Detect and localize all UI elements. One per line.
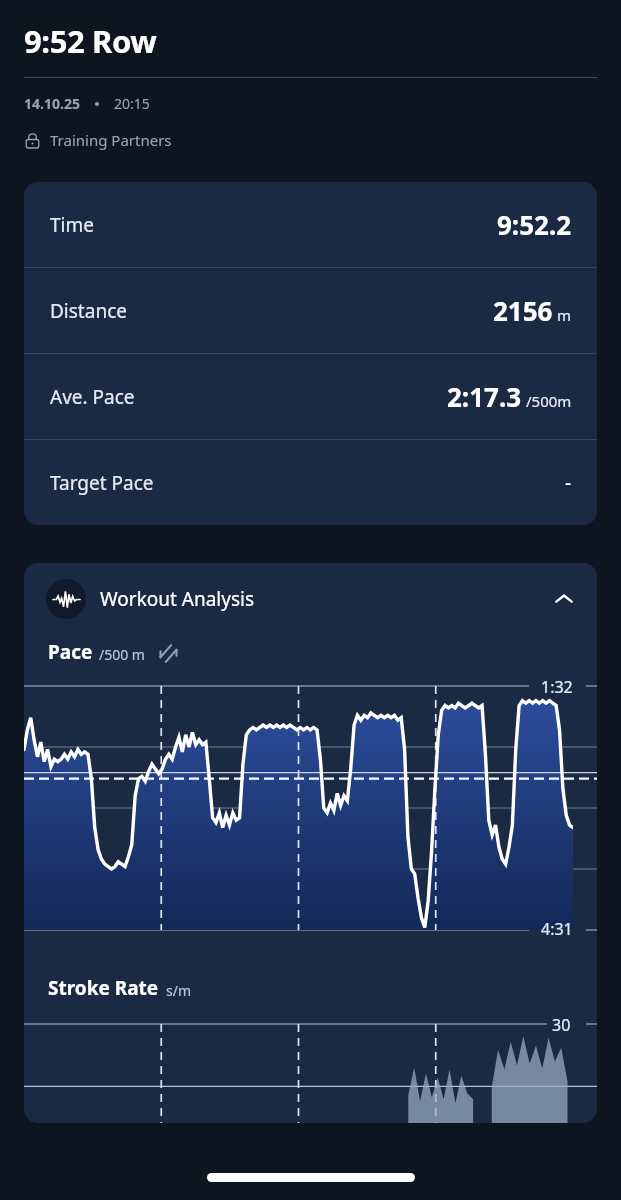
staticText: 9:52 Row	[24, 20, 157, 62]
button[interactable]: Ave. Pace	[24, 354, 597, 439]
staticText: 4:31	[541, 918, 573, 940]
other: Collapse section	[551, 586, 577, 612]
staticText: 2:17.3	[447, 379, 522, 414]
staticText: 1:32	[541, 676, 573, 698]
button[interactable]: Time	[24, 182, 597, 267]
button[interactable]: Target Pace	[24, 440, 597, 525]
staticText: /500 m	[99, 645, 145, 664]
staticText: Pace	[48, 639, 93, 665]
staticText: 2156	[493, 293, 553, 328]
staticText: 20:15	[114, 94, 150, 113]
button[interactable]: Workout Analysis	[24, 563, 597, 631]
staticText: /500m	[526, 391, 572, 411]
button[interactable]: Invert pace axis	[159, 644, 178, 663]
staticText: Target Pace	[50, 470, 154, 496]
staticText: Distance	[50, 298, 127, 324]
staticText: s/m	[166, 981, 192, 1000]
staticText: -	[565, 470, 572, 496]
staticText: Ave. Pace	[50, 384, 135, 410]
staticText: Workout Analysis	[100, 586, 255, 612]
staticText: 30	[552, 1014, 571, 1036]
staticText: 14.10.25	[24, 94, 80, 113]
staticText: 9:52.2	[497, 207, 572, 242]
staticText: m	[557, 305, 572, 325]
button[interactable]: Distance	[24, 268, 597, 353]
staticText: Training Partners	[50, 130, 172, 150]
button[interactable]: Training Partners	[24, 130, 172, 150]
staticText: Stroke Rate	[48, 975, 159, 1001]
staticText: Time	[50, 212, 94, 238]
